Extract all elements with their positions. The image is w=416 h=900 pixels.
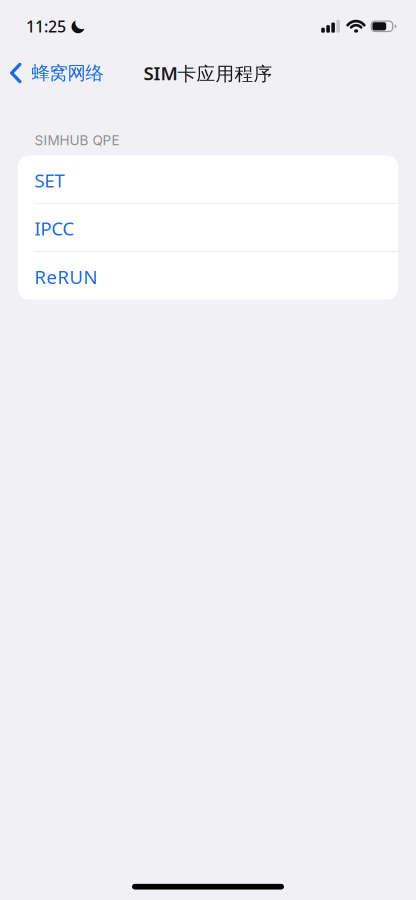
staticText: SET — [34, 168, 64, 193]
button[interactable]: ReRUN — [18, 252, 398, 300]
staticText: IPCC — [34, 216, 74, 241]
staticText: 11:25 — [26, 16, 66, 37]
staticText: SIM卡应用程序 — [143, 61, 272, 85]
staticText: SIMHUB QPE — [34, 132, 119, 148]
button[interactable]: SET — [18, 155, 398, 204]
button[interactable]: IPCC — [18, 204, 398, 252]
staticText: ReRUN — [34, 264, 97, 289]
staticText: 蜂窝网络 — [31, 61, 103, 85]
button[interactable]: 蜂窝网络 — [0, 52, 113, 94]
